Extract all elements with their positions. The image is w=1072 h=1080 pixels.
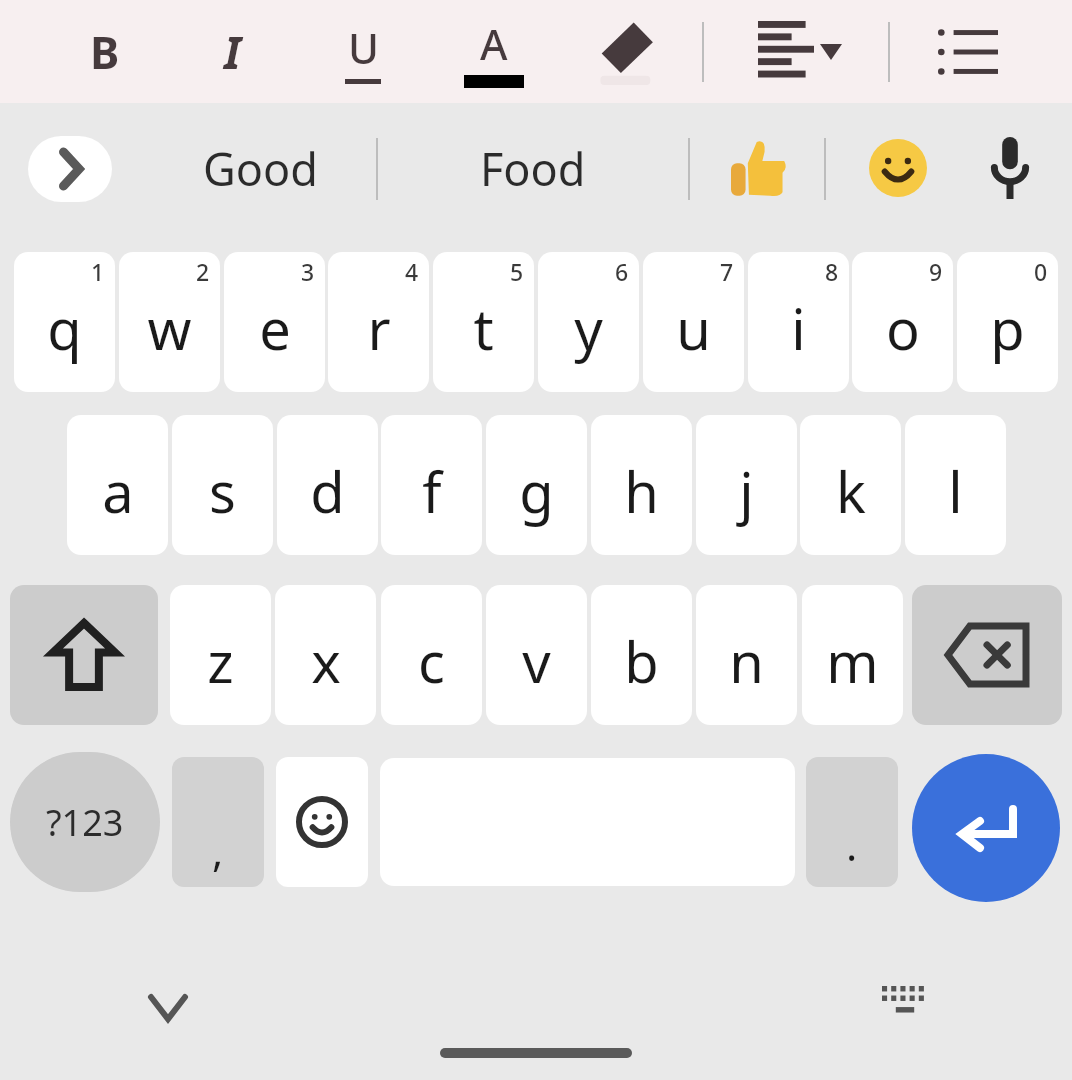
staticText: y bbox=[574, 290, 603, 366]
button[interactable]: 0 bbox=[957, 252, 1058, 392]
button[interactable]: 3 bbox=[224, 252, 325, 392]
button[interactable]: k bbox=[800, 415, 901, 555]
button[interactable]: Bold bbox=[60, 0, 150, 103]
staticText: 5 bbox=[510, 256, 524, 287]
button[interactable]: . bbox=[806, 757, 898, 887]
staticText: 4 bbox=[405, 256, 419, 287]
button[interactable]: a bbox=[67, 415, 168, 555]
button[interactable]: Enter bbox=[912, 754, 1060, 902]
staticText: g bbox=[519, 453, 554, 529]
staticText: 2 bbox=[196, 256, 210, 287]
staticText: q bbox=[47, 290, 82, 366]
staticText: B bbox=[90, 22, 120, 82]
button[interactable]: 7 bbox=[643, 252, 744, 392]
staticText: z bbox=[207, 623, 234, 699]
staticText: j bbox=[739, 453, 754, 529]
staticText: 7 bbox=[720, 256, 734, 287]
staticText: 0 bbox=[1034, 256, 1048, 287]
button[interactable]: Food bbox=[420, 103, 645, 233]
button[interactable]: Thumbs up emoji bbox=[700, 103, 818, 233]
staticText: A bbox=[480, 15, 508, 72]
staticText: b bbox=[624, 623, 659, 699]
staticText: t bbox=[473, 290, 494, 366]
staticText: I bbox=[224, 22, 241, 82]
staticText: w bbox=[147, 290, 192, 366]
button[interactable]: 1 bbox=[14, 252, 115, 392]
button[interactable]: 8 bbox=[748, 252, 849, 392]
staticText: n bbox=[729, 623, 764, 699]
button[interactable]: Bulleted list bbox=[920, 0, 1016, 103]
staticText: e bbox=[259, 290, 291, 366]
staticText: d bbox=[310, 453, 345, 529]
button[interactable]: m bbox=[802, 585, 903, 725]
button[interactable]: l bbox=[905, 415, 1006, 555]
staticText: r bbox=[367, 290, 391, 366]
button[interactable]: 5 bbox=[433, 252, 534, 392]
button[interactable]: Hide keyboard bbox=[120, 960, 216, 1056]
button[interactable]: 6 bbox=[538, 252, 639, 392]
staticText: a bbox=[102, 453, 134, 529]
button[interactable]: Text color bbox=[448, 0, 540, 103]
button[interactable]: g bbox=[486, 415, 587, 555]
button[interactable]: Expand toolbar bbox=[28, 136, 112, 202]
button[interactable]: z bbox=[170, 585, 271, 725]
button[interactable]: Good bbox=[145, 103, 375, 233]
staticText: c bbox=[418, 623, 445, 699]
staticText: 8 bbox=[825, 256, 839, 287]
button[interactable]: v bbox=[486, 585, 587, 725]
button[interactable]: c bbox=[381, 585, 482, 725]
staticText: m bbox=[826, 623, 879, 699]
button[interactable]: d bbox=[277, 415, 378, 555]
button[interactable]: Italic bbox=[190, 0, 275, 103]
staticText: v bbox=[522, 623, 551, 699]
button[interactable]: , bbox=[172, 757, 264, 887]
staticText: , bbox=[212, 822, 224, 879]
button[interactable]: Voice input bbox=[960, 103, 1060, 233]
button[interactable]: Smiley emoji bbox=[840, 103, 956, 233]
button[interactable]: 4 bbox=[328, 252, 429, 392]
staticText: 1 bbox=[91, 256, 105, 287]
staticText: ?123 bbox=[46, 798, 124, 847]
button[interactable]: Underline bbox=[318, 0, 408, 103]
button[interactable]: Shift bbox=[10, 585, 158, 725]
staticText: U bbox=[348, 19, 379, 76]
button[interactable]: Alignment bbox=[740, 0, 860, 103]
staticText: Good bbox=[203, 138, 318, 199]
staticText: k bbox=[836, 453, 866, 529]
button[interactable]: 9 bbox=[852, 252, 953, 392]
button[interactable]: Switch keyboard bbox=[860, 958, 950, 1048]
button[interactable]: s bbox=[172, 415, 273, 555]
staticText: 6 bbox=[615, 256, 629, 287]
button[interactable]: Backspace bbox=[912, 585, 1062, 725]
button[interactable]: Emoji bbox=[276, 757, 368, 887]
button[interactable]: f bbox=[381, 415, 482, 555]
button[interactable]: b bbox=[591, 585, 692, 725]
button[interactable]: ?123 bbox=[10, 752, 160, 892]
button[interactable]: h bbox=[591, 415, 692, 555]
staticText: s bbox=[209, 453, 236, 529]
staticText: p bbox=[990, 290, 1025, 366]
staticText: h bbox=[624, 453, 659, 529]
staticText: o bbox=[886, 290, 920, 366]
button[interactable]: n bbox=[696, 585, 797, 725]
staticText: . bbox=[846, 816, 858, 873]
staticText: u bbox=[676, 290, 711, 366]
staticText: x bbox=[311, 623, 341, 699]
staticText: 9 bbox=[929, 256, 943, 287]
button[interactable]: Highlight bbox=[578, 0, 674, 103]
staticText: f bbox=[422, 453, 442, 529]
staticText: Food bbox=[480, 138, 586, 199]
staticText: l bbox=[948, 453, 963, 529]
staticText: 3 bbox=[301, 256, 315, 287]
button[interactable]: j bbox=[696, 415, 797, 555]
staticText: i bbox=[791, 290, 806, 366]
button[interactable]: 2 bbox=[119, 252, 220, 392]
button[interactable]: x bbox=[275, 585, 376, 725]
